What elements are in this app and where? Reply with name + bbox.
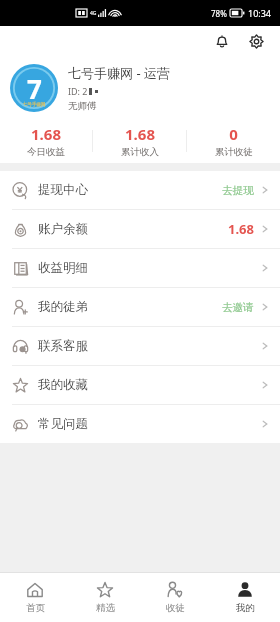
staticText: 4G	[90, 10, 97, 17]
button[interactable]: 联系客服	[0, 327, 280, 365]
staticText: 累计收入	[121, 146, 159, 158]
button[interactable]: 常见问题	[0, 405, 280, 443]
staticText: 提现中心	[38, 182, 88, 198]
staticText: 七号手赚网	[23, 102, 46, 108]
staticText: 去提现	[222, 184, 254, 197]
button[interactable]: 我的	[210, 573, 280, 622]
button[interactable]: 我的徒弟	[0, 288, 280, 326]
button[interactable]: 账户余额	[0, 210, 280, 248]
staticText: 我的徒弟	[38, 299, 88, 315]
staticText: 今日收益	[27, 146, 65, 158]
staticText: 我的收藏	[38, 377, 88, 393]
button[interactable]: 我的收藏	[0, 366, 280, 404]
staticText: 收益明细	[38, 260, 88, 276]
button[interactable]: 收徒	[140, 573, 210, 622]
staticText: 7	[27, 71, 42, 106]
staticText: 常见问题	[38, 416, 88, 432]
button[interactable]: 精选	[70, 573, 140, 622]
staticText: 收徒	[166, 602, 185, 614]
staticText: 账户余额	[38, 221, 88, 237]
staticText: 1.68	[228, 220, 254, 238]
staticText: 我的	[236, 602, 255, 614]
staticText: 累计收徒	[215, 146, 253, 158]
staticText: 首页	[26, 602, 45, 614]
button[interactable]: Settings	[242, 27, 270, 55]
staticText: 10:34	[248, 7, 272, 19]
staticText: 精选	[96, 602, 115, 614]
staticText: ID: 2	[68, 85, 88, 97]
button[interactable]: 首页	[0, 573, 70, 622]
staticText: 无师傅	[68, 100, 97, 112]
button[interactable]: Notifications	[208, 27, 236, 55]
button[interactable]: 提现中心	[0, 171, 280, 209]
staticText: 1.68	[31, 124, 61, 144]
staticText: 联系客服	[38, 338, 88, 354]
staticText: 七号手赚网 - 运营	[68, 64, 170, 82]
button[interactable]: 收益明细	[0, 249, 280, 287]
staticText: 去邀请	[222, 301, 254, 314]
staticText: 0	[229, 124, 238, 144]
button[interactable]: 0	[187, 124, 280, 158]
staticText: 1.68	[125, 124, 155, 144]
button[interactable]: 1.68	[0, 124, 92, 158]
button[interactable]: 1.68	[93, 124, 186, 158]
staticText: 78%	[211, 8, 227, 19]
